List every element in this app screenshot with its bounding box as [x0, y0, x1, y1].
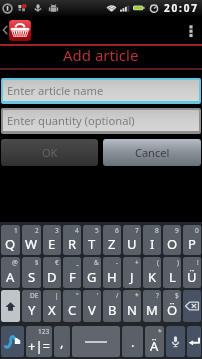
- button[interactable]: More options: [180, 16, 202, 44]
- staticText: 123: [38, 327, 50, 336]
- staticText: _: [76, 258, 79, 267]
- button[interactable]: Enter quantity (optional): [3, 110, 199, 131]
- button[interactable]: B: [103, 290, 121, 322]
- staticText: Ä: [150, 337, 159, 355]
- button[interactable]: C: [63, 290, 81, 322]
- button[interactable]: A: [1, 257, 20, 288]
- staticText: 3: [55, 226, 59, 235]
- button[interactable]: V: [83, 290, 101, 322]
- staticText: Z: [108, 235, 116, 253]
- button[interactable]: Q: [1, 225, 20, 255]
- staticText: H: [107, 268, 117, 286]
- button[interactable]: I: [143, 225, 161, 255]
- button[interactable]: R: [63, 225, 81, 255]
- button[interactable]: Backspace: [183, 290, 201, 322]
- button[interactable]: OK: [1, 139, 98, 166]
- staticText: ": [76, 291, 79, 300]
- staticText: 7: [135, 226, 139, 235]
- button[interactable]: F: [63, 257, 81, 288]
- staticText: W: [25, 235, 38, 253]
- button[interactable]: Navigate up: [1, 16, 31, 44]
- button[interactable]: S: [22, 257, 41, 288]
- staticText: O: [167, 235, 178, 253]
- staticText: P: [188, 235, 196, 253]
- button[interactable]: Enter: [187, 326, 201, 357]
- button[interactable]: L: [163, 257, 181, 288]
- staticText: +|=: [28, 337, 51, 355]
- staticText: 0: [195, 226, 199, 235]
- staticText: 5: [95, 226, 99, 235]
- staticText: ?: [156, 291, 159, 300]
- staticText: Cancel: [135, 145, 170, 160]
- staticText: I: [150, 235, 155, 253]
- button[interactable]: Ü: [183, 257, 201, 288]
- button[interactable]: .: [122, 326, 143, 357]
- button[interactable]: U: [123, 225, 141, 255]
- staticText: DE: [30, 291, 39, 300]
- staticText: Y: [28, 301, 36, 319]
- staticText: A: [6, 268, 15, 286]
- button[interactable]: M: [143, 290, 161, 322]
- staticText: G: [87, 268, 97, 286]
- staticText: M: [146, 301, 158, 319]
- staticText: Q: [5, 235, 16, 253]
- button[interactable]: Gesture typing: [1, 326, 24, 357]
- staticText: 20:07: [164, 1, 199, 15]
- staticText: Ö: [167, 301, 178, 319]
- staticText: +: [135, 258, 139, 267]
- staticText: *: [135, 291, 139, 300]
- button[interactable]: Space: [72, 326, 120, 357]
- staticText: §: [35, 258, 39, 267]
- staticText: R: [68, 235, 77, 253]
- staticText: 4: [75, 226, 79, 235]
- button[interactable]: D: [43, 257, 61, 288]
- button[interactable]: O: [163, 225, 181, 255]
- button[interactable]: H: [103, 257, 121, 288]
- button[interactable]: Voice input: [166, 326, 185, 357]
- staticText: 1: [14, 226, 18, 235]
- staticText: |: [55, 291, 59, 300]
- button[interactable]: J: [123, 257, 141, 288]
- staticText: ): [177, 258, 179, 267]
- staticText: $: [175, 291, 179, 300]
- button[interactable]: P: [183, 225, 201, 255]
- button[interactable]: Ö: [163, 290, 181, 322]
- staticText: OK: [42, 145, 58, 160]
- button[interactable]: G: [83, 257, 101, 288]
- staticText: *: [158, 327, 162, 336]
- staticText: 2: [35, 226, 39, 235]
- button[interactable]: K: [143, 257, 161, 288]
- staticText: Enter quantity (optional): [7, 113, 135, 128]
- staticText: 8: [155, 226, 159, 235]
- button[interactable]: +|=: [26, 326, 52, 357]
- staticText: F: [69, 268, 76, 286]
- staticText: U: [127, 235, 137, 253]
- button[interactable]: E: [43, 225, 61, 255]
- staticText: -: [116, 258, 119, 267]
- staticText: N: [127, 301, 137, 319]
- button[interactable]: ,: [54, 326, 70, 357]
- staticText: €: [55, 258, 59, 267]
- staticText: L: [169, 268, 176, 286]
- staticText: V: [88, 301, 96, 319]
- button[interactable]: Shift: [1, 290, 20, 322]
- button[interactable]: Ä: [145, 326, 164, 357]
- button[interactable]: Y: [22, 290, 41, 322]
- staticText: 6: [115, 226, 119, 235]
- staticText: K: [148, 268, 157, 286]
- staticText: .: [131, 333, 135, 351]
- button[interactable]: Cancel: [103, 139, 201, 166]
- button[interactable]: N: [123, 290, 141, 322]
- staticText: S: [28, 268, 36, 286]
- staticText: Ü: [187, 268, 197, 286]
- button[interactable]: Enter article name: [3, 80, 199, 101]
- button[interactable]: W: [22, 225, 41, 255]
- staticText: T: [88, 235, 96, 253]
- staticText: ,: [60, 333, 64, 351]
- button[interactable]: T: [83, 225, 101, 255]
- staticText: 9: [175, 226, 179, 235]
- staticText: !: [197, 258, 199, 267]
- staticText: E: [48, 235, 56, 253]
- button[interactable]: Z: [103, 225, 121, 255]
- button[interactable]: X: [43, 290, 61, 322]
